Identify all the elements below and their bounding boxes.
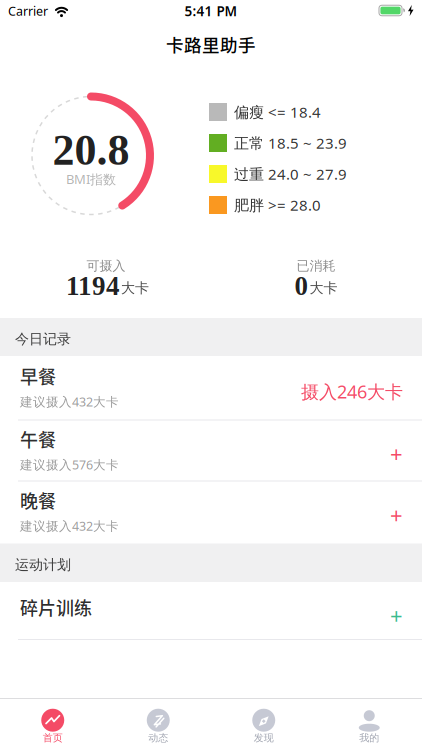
staticText: 20.8 xyxy=(52,126,129,174)
staticText: 摄入246大卡 xyxy=(301,379,403,404)
button[interactable]: 动态 xyxy=(105,699,211,750)
staticText: 大卡 xyxy=(309,279,337,297)
staticText: 首页 xyxy=(43,732,63,744)
staticText: 偏瘦 <= 18.4 xyxy=(234,102,321,122)
staticText: 正常 18.5 ~ 23.9 xyxy=(234,133,347,153)
staticText: 午餐 xyxy=(20,426,56,452)
staticText: 5:41 PM xyxy=(184,2,237,20)
staticText: 碎片训练 xyxy=(20,594,92,620)
staticText: 发现 xyxy=(254,732,274,744)
staticText: 大卡 xyxy=(121,279,149,297)
staticText: 卡路里助手 xyxy=(166,31,256,57)
button[interactable]: 碎片训练 xyxy=(0,582,422,640)
staticText: + xyxy=(390,438,403,468)
staticText: + xyxy=(390,600,403,630)
staticText: 晚餐 xyxy=(20,487,56,513)
staticText: 肥胖 >= 28.0 xyxy=(234,195,321,215)
staticText: 建议摄入432大卡 xyxy=(20,393,119,410)
staticText: 1194 xyxy=(66,271,120,301)
staticText: BMI指数 xyxy=(66,170,116,188)
staticText: 已消耗 xyxy=(296,258,335,274)
button[interactable]: 早餐 xyxy=(0,356,422,421)
staticText: 建议摄入576大卡 xyxy=(20,456,119,473)
staticText: 我的 xyxy=(359,732,379,744)
button[interactable]: 午餐 xyxy=(0,421,422,482)
button[interactable]: 发现 xyxy=(211,699,316,750)
staticText: 今日记录 xyxy=(15,330,71,348)
staticText: 过重 24.0 ~ 27.9 xyxy=(234,164,347,184)
staticText: 可摄入 xyxy=(86,258,125,274)
button[interactable]: 我的 xyxy=(316,699,422,750)
button[interactable]: 首页 xyxy=(0,699,105,750)
staticText: 早餐 xyxy=(20,363,56,389)
staticText: 动态 xyxy=(148,732,168,744)
staticText: Carrier xyxy=(8,2,48,19)
staticText: 0 xyxy=(294,271,308,301)
staticText: + xyxy=(390,500,403,530)
staticText: 建议摄入432大卡 xyxy=(20,517,119,534)
staticText: 运动计划 xyxy=(15,556,71,573)
button[interactable]: 晚餐 xyxy=(0,482,422,543)
